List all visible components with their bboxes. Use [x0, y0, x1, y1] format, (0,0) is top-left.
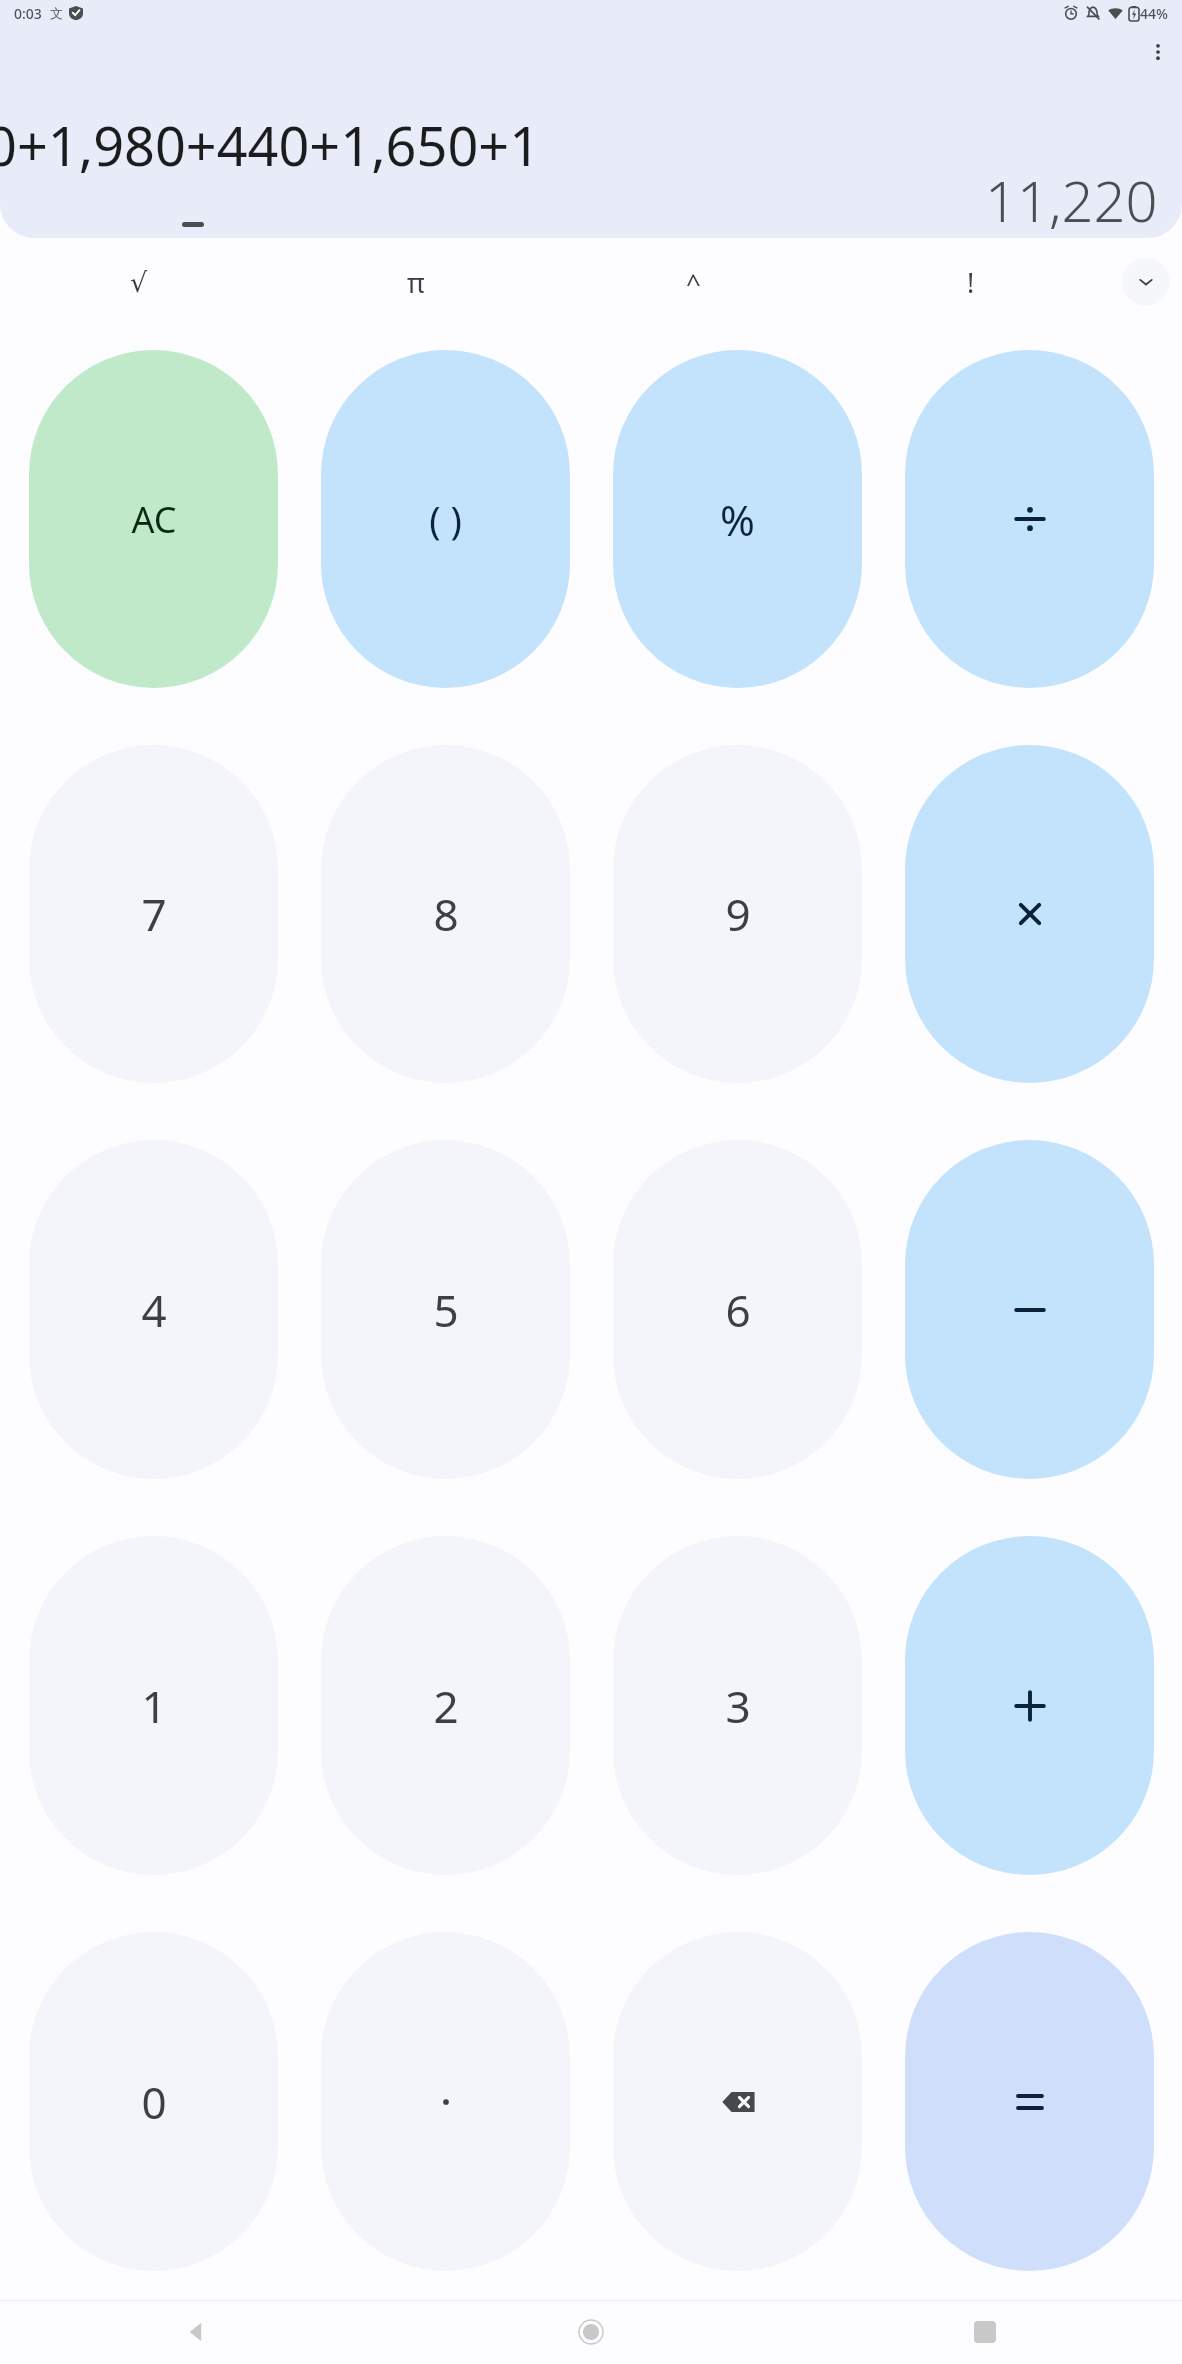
- button[interactable]: 0: [29, 1932, 278, 2271]
- staticText: 1: [141, 1676, 167, 1736]
- button[interactable]: 9: [613, 745, 862, 1083]
- button[interactable]: ( ): [321, 350, 570, 688]
- button[interactable]: 4: [29, 1140, 278, 1479]
- staticText: 0:03: [14, 4, 42, 23]
- staticText: 11,220: [985, 162, 1158, 238]
- button[interactable]: !: [832, 252, 1110, 312]
- staticText: %: [720, 491, 755, 548]
- button[interactable]: 6: [613, 1140, 862, 1479]
- staticText: ( ): [429, 493, 462, 545]
- button[interactable]: %: [613, 350, 862, 688]
- staticText: 8: [433, 884, 459, 944]
- button[interactable]: Expand: [1122, 258, 1170, 306]
- button[interactable]: 5: [321, 1140, 570, 1479]
- button[interactable]: Equals: [905, 1932, 1154, 2271]
- button[interactable]: Recent apps: [788, 2300, 1182, 2364]
- button[interactable]: √: [0, 252, 277, 312]
- staticText: 7: [141, 884, 167, 944]
- staticText: 文: [50, 5, 63, 21]
- staticText: ^: [686, 265, 701, 300]
- staticText: 3: [725, 1676, 751, 1736]
- button[interactable]: 2: [321, 1536, 570, 1875]
- button[interactable]: 7: [29, 745, 278, 1083]
- button[interactable]: More options: [1134, 28, 1182, 76]
- staticText: AC: [131, 495, 177, 544]
- button[interactable]: Plus: [905, 1536, 1154, 1875]
- button[interactable]: Minus: [905, 1140, 1154, 1479]
- staticText: 9: [725, 884, 751, 944]
- staticText: 0+1,980+440+1,650+1: [0, 108, 541, 178]
- button[interactable]: Multiply: [905, 745, 1154, 1083]
- button[interactable]: ^: [554, 252, 832, 312]
- staticText: 0: [141, 2072, 167, 2132]
- button[interactable]: Home: [394, 2300, 788, 2364]
- button[interactable]: AC: [29, 350, 278, 688]
- button[interactable]: 3: [613, 1536, 862, 1875]
- staticText: 44%: [1140, 4, 1168, 23]
- staticText: 6: [725, 1280, 751, 1340]
- staticText: 2: [433, 1676, 459, 1736]
- button[interactable]: 8: [321, 745, 570, 1083]
- button[interactable]: Divide: [905, 350, 1154, 688]
- button[interactable]: 1: [29, 1536, 278, 1875]
- button[interactable]: Backspace: [613, 1932, 862, 2271]
- button[interactable]: π: [277, 252, 554, 312]
- staticText: √: [130, 267, 148, 298]
- button[interactable]: Decimal point: [321, 1932, 570, 2271]
- staticText: 5: [433, 1280, 459, 1340]
- button[interactable]: Back: [0, 2300, 394, 2364]
- staticText: 4: [141, 1280, 167, 1340]
- staticText: π: [407, 264, 425, 301]
- staticText: !: [967, 264, 975, 301]
